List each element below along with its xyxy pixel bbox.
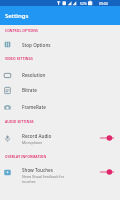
button[interactable]: Bitrate [0, 82, 120, 98]
button[interactable]: FrameRate [0, 99, 120, 115]
staticText: CONTROL OPTIONS [5, 28, 38, 32]
staticText: AUDIO SETTINGS [5, 119, 34, 123]
staticText: Show Visual feedback for touches [22, 174, 65, 184]
staticText: 52% [80, 1, 87, 6]
staticText: Show Touches [22, 167, 53, 173]
staticText: OVERLAY INFORMATION [5, 154, 47, 158]
staticText: Record Audio [22, 133, 52, 139]
staticText: 09:04 [99, 1, 108, 6]
staticText: FrameRate [22, 104, 46, 110]
button[interactable]: Resolution [0, 67, 120, 83]
button[interactable]: Toggle setting [99, 166, 116, 178]
staticText: Bitrate [22, 87, 37, 93]
button[interactable]: Show Touches [0, 163, 120, 187]
staticText: VIDEO SETTINGS [5, 56, 33, 60]
button[interactable]: Toggle setting [99, 132, 116, 144]
staticText: Settings [5, 12, 29, 20]
button[interactable]: Record Audio [0, 128, 120, 149]
staticText: Stop Options [22, 42, 51, 48]
staticText: Resolution [22, 72, 46, 78]
staticText: Microphone [22, 140, 43, 145]
button[interactable]: Stop Options [0, 37, 120, 52]
